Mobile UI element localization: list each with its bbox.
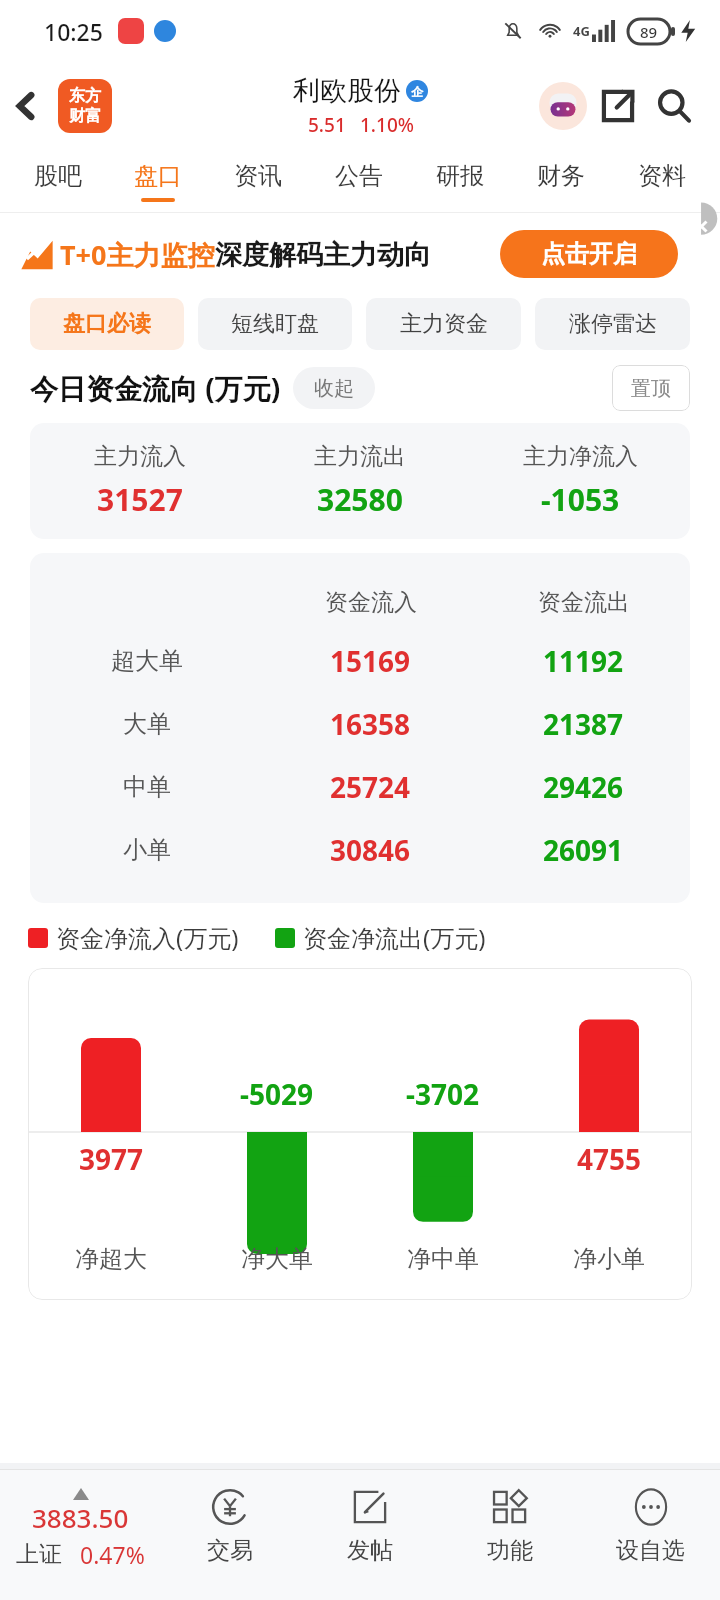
- staticText: 1.10%: [360, 112, 414, 138]
- button[interactable]: 置顶: [612, 365, 690, 411]
- staticText: -1053: [541, 479, 620, 520]
- staticText: 主力流出: [314, 442, 406, 471]
- staticText: 15169: [330, 642, 411, 680]
- button[interactable]: 股吧: [8, 150, 108, 212]
- staticText: 主力净流入: [523, 442, 638, 471]
- button[interactable]: 发帖: [300, 1470, 440, 1600]
- staticText: 资金净流入(万元): [56, 921, 239, 954]
- staticText: 资金净流出(万元): [303, 921, 486, 954]
- staticText: 11192: [543, 642, 624, 680]
- staticText: 设自选: [616, 1536, 685, 1565]
- staticText: 功能: [487, 1536, 533, 1565]
- staticText: 大单: [123, 709, 171, 739]
- staticText: 点击开启: [541, 239, 637, 269]
- staticText: 资金流出: [538, 588, 630, 617]
- staticText: 小单: [123, 835, 171, 865]
- staticText: 研报: [436, 161, 484, 191]
- staticText: 发帖: [347, 1536, 393, 1565]
- button[interactable]: Share: [590, 78, 646, 134]
- staticText: 中单: [123, 772, 171, 802]
- staticText: 4755: [577, 1140, 642, 1178]
- staticText: 主力流入: [94, 442, 186, 471]
- staticText: 资料: [638, 161, 686, 191]
- staticText: 盘口: [134, 161, 182, 191]
- staticText: 25724: [330, 768, 411, 806]
- button[interactable]: 研报: [409, 150, 510, 212]
- staticText: 置顶: [631, 376, 671, 401]
- staticText: 深度解码主力动向: [215, 238, 431, 272]
- staticText: 超大单: [111, 646, 183, 676]
- staticText: 涨停雷达: [569, 310, 657, 338]
- staticText: 26091: [543, 831, 624, 869]
- staticText: 29426: [543, 768, 624, 806]
- staticText: 收起: [314, 376, 354, 401]
- button[interactable]: Search: [646, 78, 702, 134]
- button[interactable]: 资料: [611, 150, 712, 212]
- staticText: 21387: [543, 705, 624, 743]
- button[interactable]: 主力资金: [366, 298, 521, 350]
- staticText: 净超大: [75, 1244, 147, 1274]
- button[interactable]: Close: [680, 213, 720, 253]
- staticText: -5029: [240, 1075, 314, 1113]
- staticText: 企: [411, 84, 423, 99]
- button[interactable]: Back: [0, 80, 52, 132]
- staticText: T+0主力监控: [60, 236, 215, 273]
- button[interactable]: 主力流入: [30, 423, 690, 539]
- staticText: 3977: [79, 1140, 144, 1178]
- button[interactable]: 功能: [440, 1470, 580, 1600]
- button[interactable]: AI assistant: [536, 79, 590, 133]
- staticText: 东方: [69, 86, 101, 106]
- staticText: 10:25: [44, 16, 103, 47]
- button[interactable]: 东方: [58, 79, 112, 133]
- staticText: 资讯: [234, 161, 282, 191]
- staticText: 盘口必读: [63, 310, 151, 338]
- button[interactable]: 点击开启: [500, 230, 678, 278]
- button[interactable]: 涨停雷达: [535, 298, 690, 350]
- staticText: 财务: [537, 161, 585, 191]
- button[interactable]: 资讯: [208, 150, 308, 212]
- button[interactable]: 财务: [510, 150, 611, 212]
- button[interactable]: 盘口必读: [30, 298, 184, 350]
- button[interactable]: 公告: [308, 150, 409, 212]
- staticText: 0.47%: [80, 1539, 145, 1570]
- staticText: 今日资金流向 (万元): [30, 369, 281, 407]
- staticText: 3883.50: [32, 1500, 129, 1535]
- staticText: 上证: [16, 1540, 62, 1569]
- staticText: 公告: [335, 161, 383, 191]
- button[interactable]: 盘口: [108, 150, 208, 212]
- button[interactable]: 3977: [28, 968, 692, 1300]
- staticText: 利欧股份: [293, 74, 401, 108]
- staticText: 短线盯盘: [231, 310, 319, 338]
- button[interactable]: 收起: [293, 367, 375, 409]
- button[interactable]: 设自选: [580, 1470, 720, 1600]
- staticText: 主力资金: [400, 310, 488, 338]
- staticText: 16358: [330, 705, 411, 743]
- staticText: 净小单: [573, 1244, 645, 1274]
- staticText: 资金流入: [325, 588, 417, 617]
- button[interactable]: 3883.50: [0, 1470, 160, 1600]
- staticText: 股吧: [34, 161, 82, 191]
- staticText: 4G: [573, 22, 590, 40]
- staticText: 净大单: [241, 1244, 313, 1274]
- staticText: 财富: [69, 106, 101, 126]
- staticText: 30846: [330, 831, 411, 869]
- staticText: -3702: [406, 1075, 480, 1113]
- staticText: 32580: [317, 479, 403, 520]
- button[interactable]: 短线盯盘: [198, 298, 352, 350]
- staticText: 交易: [207, 1536, 253, 1565]
- button[interactable]: 交易: [160, 1470, 300, 1600]
- staticText: 5.51: [308, 112, 346, 138]
- staticText: 89: [640, 22, 658, 42]
- staticText: 净中单: [407, 1244, 479, 1274]
- button[interactable]: 资金流入: [30, 553, 690, 903]
- staticText: 31527: [97, 479, 183, 520]
